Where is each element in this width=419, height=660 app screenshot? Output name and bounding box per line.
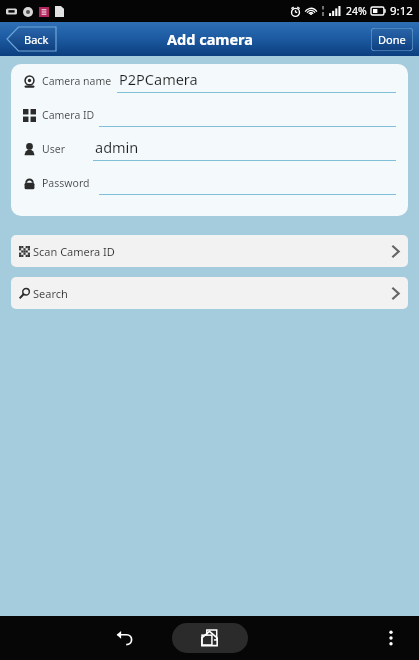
staticText: Add camera [167, 29, 253, 49]
staticText: User [42, 142, 65, 156]
button[interactable]: Recents [172, 623, 248, 653]
staticText: Done [378, 32, 406, 47]
button[interactable]: Back [104, 618, 144, 658]
staticText: Back [24, 32, 49, 47]
button[interactable]: Search [11, 277, 408, 309]
button[interactable]: Done [371, 28, 413, 51]
staticText: 9:12 [390, 3, 413, 19]
staticText: Search [33, 286, 68, 301]
staticText: Camera ID [42, 108, 95, 122]
button[interactable]: More options [373, 620, 409, 656]
staticText: Camera name [42, 74, 112, 88]
staticText: P2PCamera [119, 69, 198, 89]
staticText: Password [42, 176, 90, 190]
staticText: admin [95, 137, 139, 157]
button[interactable]: Back [7, 27, 59, 51]
button[interactable]: Scan Camera ID [11, 235, 408, 267]
staticText: 24% [346, 4, 367, 18]
staticText: Scan Camera ID [33, 244, 115, 259]
button[interactable]: Home [189, 618, 229, 658]
